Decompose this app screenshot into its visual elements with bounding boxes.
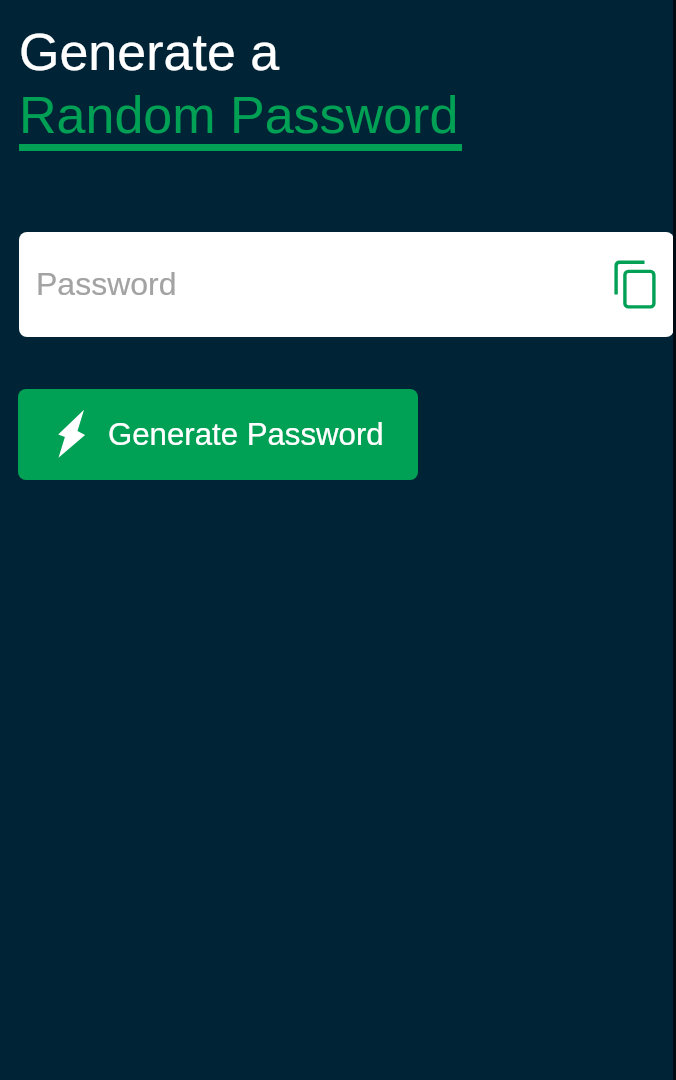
button[interactable]: Copy password	[612, 255, 668, 311]
staticText: Random Password	[19, 86, 459, 144]
staticText: Generate Password	[108, 417, 384, 452]
staticText: Password	[36, 266, 177, 302]
button[interactable]: Generate Password	[18, 389, 418, 480]
button[interactable]: Password text field	[19, 232, 674, 337]
staticText: Generate a	[19, 23, 280, 81]
